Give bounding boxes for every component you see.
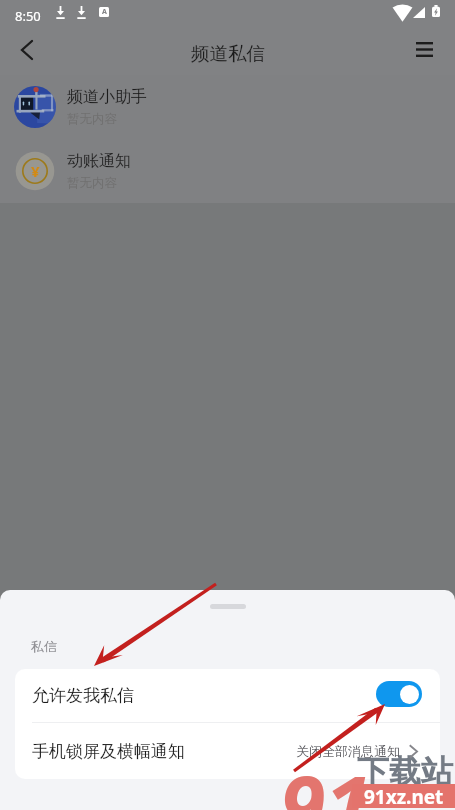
staticText: 关闭全部消息通知 bbox=[296, 743, 400, 759]
staticText: 8:50 bbox=[15, 7, 41, 25]
staticText: 91xz.net bbox=[364, 784, 444, 808]
button[interactable]: Menu bbox=[408, 33, 440, 65]
staticText: 频道小助手 bbox=[67, 87, 147, 107]
button[interactable]: 手机锁屏及横幅通知 bbox=[15, 723, 440, 779]
staticText: 暂无内容 bbox=[67, 111, 117, 127]
staticText: 允许发我私信 bbox=[32, 685, 134, 706]
button[interactable]: ¥ bbox=[0, 139, 455, 203]
staticText: 下载站 bbox=[357, 752, 453, 792]
button[interactable]: Allow private messages toggle bbox=[376, 681, 422, 707]
button[interactable]: 允许发我私信 bbox=[15, 669, 440, 722]
staticText: 频道私信 bbox=[191, 42, 265, 65]
button[interactable]: Back bbox=[11, 34, 42, 65]
staticText: 91 bbox=[280, 748, 371, 810]
staticText: 暂无内容 bbox=[67, 175, 117, 191]
staticText: 动账通知 bbox=[67, 151, 131, 171]
staticText: 手机锁屏及横幅通知 bbox=[32, 741, 185, 762]
staticText: ¥ bbox=[31, 161, 40, 181]
staticText: A bbox=[102, 7, 107, 17]
staticText: 私信 bbox=[31, 638, 57, 654]
button[interactable]: 频道小助手 bbox=[0, 75, 455, 139]
